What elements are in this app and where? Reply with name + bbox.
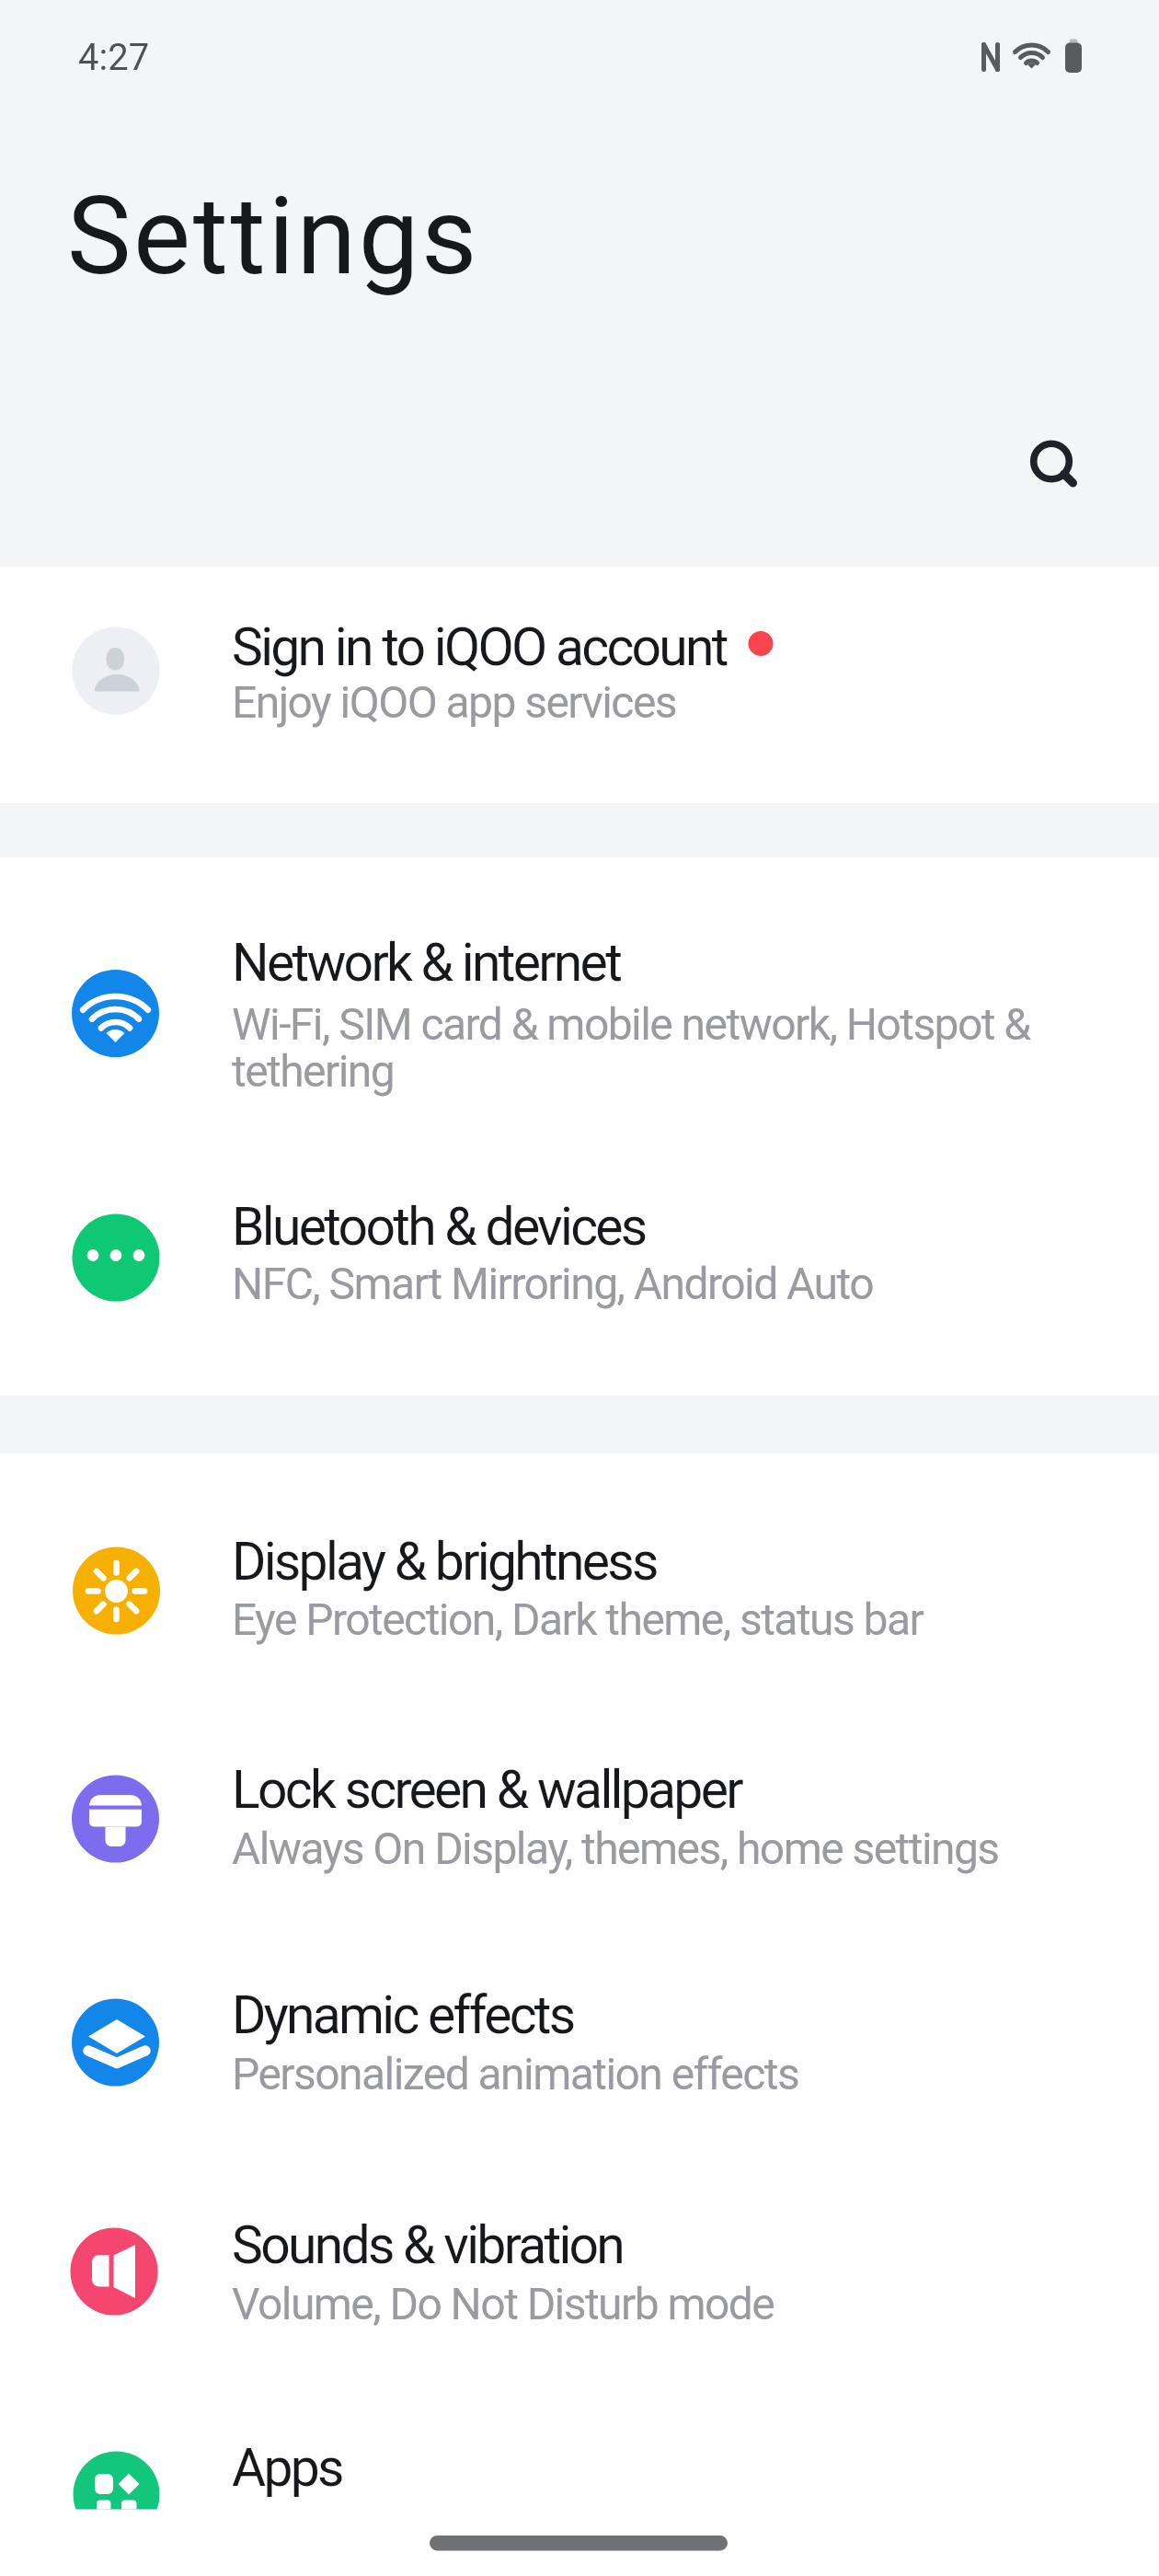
staticText: Volume, Do Not Disturb mode — [232, 2278, 775, 2329]
button[interactable] — [0, 1928, 1159, 2156]
staticText: Bluetooth & devices — [232, 1196, 646, 1258]
staticText: Personalized animation effects — [232, 2048, 799, 2099]
button[interactable] — [0, 857, 1159, 1124]
button[interactable] — [0, 2385, 1159, 2513]
staticText: Apps — [232, 2437, 342, 2499]
button[interactable] — [1005, 415, 1097, 507]
button[interactable] — [0, 1700, 1159, 1928]
staticText: Lock screen & wallpaper — [232, 1759, 741, 1821]
button[interactable] — [0, 567, 1159, 803]
staticText: Wi-Fi, SIM card & mobile network, Hotspo… — [232, 998, 1030, 1050]
staticText: tethering — [232, 1045, 395, 1097]
staticText: Display & brightness — [232, 1531, 657, 1593]
staticText: Dynamic effects — [232, 1984, 574, 2046]
staticText: Settings — [67, 173, 480, 299]
button[interactable] — [0, 2156, 1159, 2385]
staticText: Network & internet — [232, 932, 621, 994]
staticText: Sounds & vibration — [232, 2214, 624, 2276]
button[interactable] — [0, 1454, 1159, 1700]
staticText: 4:27 — [78, 36, 150, 79]
staticText: Always On Display, themes, home settings — [232, 1823, 999, 1874]
staticText: NFC, Smart Mirroring, Android Auto — [232, 1258, 874, 1309]
button[interactable] — [0, 1124, 1159, 1396]
staticText: Sign in to iQOO account — [232, 616, 727, 678]
staticText: Enjoy iQOO app services — [232, 676, 677, 728]
staticText: Eye Protection, Dark theme, status bar — [232, 1593, 924, 1645]
